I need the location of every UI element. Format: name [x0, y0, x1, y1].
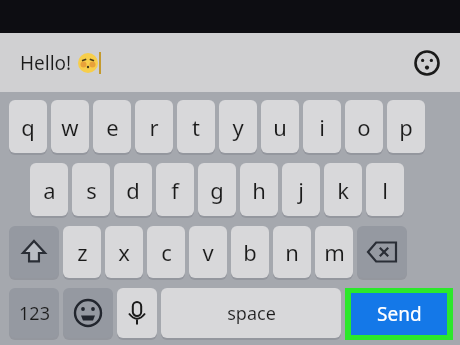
- staticText: w: [61, 112, 79, 142]
- button[interactable]: 123: [9, 288, 59, 340]
- button[interactable]: Voice input: [117, 288, 157, 340]
- button[interactable]: a: [30, 163, 68, 218]
- button[interactable]: s: [72, 163, 110, 218]
- button[interactable]: n: [273, 226, 311, 280]
- staticText: Send: [377, 301, 422, 327]
- button[interactable]: d: [114, 163, 152, 218]
- staticText: y: [232, 112, 244, 142]
- button[interactable]: x: [105, 226, 143, 280]
- staticText: q: [21, 112, 35, 142]
- staticText: v: [202, 237, 214, 267]
- staticText: i: [319, 112, 325, 142]
- staticText: u: [273, 112, 287, 142]
- button[interactable]: t: [177, 100, 215, 155]
- staticText: h: [252, 175, 266, 205]
- button[interactable]: Hello!: [20, 50, 101, 76]
- button[interactable]: b: [231, 226, 269, 280]
- button[interactable]: q: [9, 100, 47, 155]
- button[interactable]: f: [156, 163, 194, 218]
- staticText: b: [243, 237, 257, 267]
- staticText: s: [86, 175, 97, 205]
- staticText: t: [192, 112, 200, 142]
- staticText: d: [126, 175, 140, 205]
- staticText: f: [171, 175, 179, 205]
- staticText: m: [324, 237, 345, 267]
- button[interactable]: h: [240, 163, 278, 218]
- button[interactable]: e: [93, 100, 131, 155]
- staticText: r: [149, 112, 159, 142]
- button[interactable]: g: [198, 163, 236, 218]
- button[interactable]: r: [135, 100, 173, 155]
- staticText: Hello!: [20, 50, 72, 76]
- staticText: j: [298, 175, 304, 205]
- button[interactable]: space: [161, 288, 341, 340]
- button[interactable]: Emoji keyboard: [63, 288, 113, 340]
- button[interactable]: o: [345, 100, 383, 155]
- button[interactable]: j: [282, 163, 320, 218]
- button[interactable]: p: [387, 100, 425, 155]
- button[interactable]: Send: [345, 288, 453, 340]
- staticText: c: [161, 237, 172, 267]
- staticText: o: [357, 112, 371, 142]
- button[interactable]: y: [219, 100, 257, 155]
- button[interactable]: Emoji: [410, 46, 444, 80]
- button[interactable]: c: [147, 226, 185, 280]
- button[interactable]: Backspace: [357, 226, 407, 280]
- staticText: e: [106, 112, 119, 142]
- button[interactable]: u: [261, 100, 299, 155]
- staticText: l: [382, 175, 388, 205]
- staticText: p: [399, 112, 413, 142]
- button[interactable]: i: [303, 100, 341, 155]
- staticText: g: [210, 175, 224, 205]
- staticText: 123: [19, 301, 50, 326]
- button[interactable]: v: [189, 226, 227, 280]
- button[interactable]: z: [63, 226, 101, 280]
- staticText: z: [77, 237, 88, 267]
- button[interactable]: k: [324, 163, 362, 218]
- button[interactable]: m: [315, 226, 353, 280]
- staticText: n: [285, 237, 299, 267]
- button[interactable]: l: [366, 163, 404, 218]
- button[interactable]: Shift: [9, 226, 59, 280]
- staticText: x: [118, 237, 130, 267]
- staticText: k: [337, 175, 349, 205]
- staticText: space: [227, 301, 276, 326]
- button[interactable]: w: [51, 100, 89, 155]
- staticText: a: [43, 175, 56, 205]
